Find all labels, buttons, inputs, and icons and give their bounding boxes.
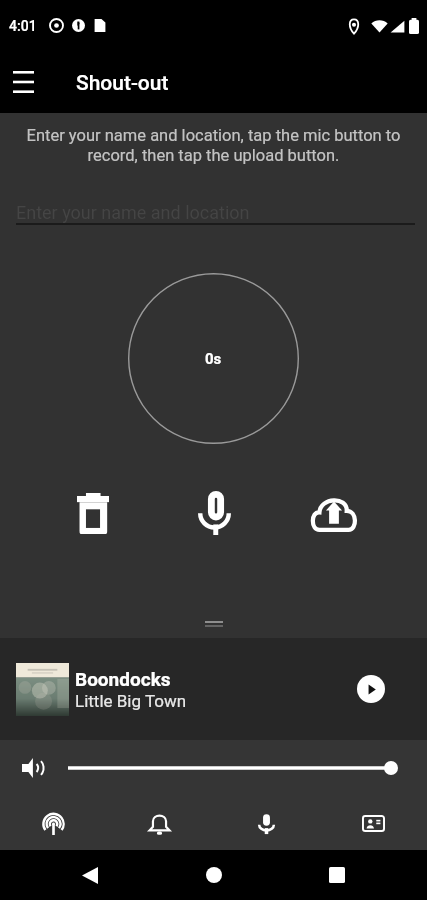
button[interactable]: Upload recording <box>306 485 362 541</box>
staticText: Enter your name and location <box>16 202 250 223</box>
staticText: 0s <box>205 350 222 368</box>
button[interactable]: Open navigation menu <box>0 59 46 105</box>
button[interactable]: Back <box>66 851 114 899</box>
button[interactable]: Notifications <box>106 805 213 841</box>
staticText: 4:01 <box>9 18 37 34</box>
button[interactable]: Play <box>349 667 393 711</box>
button[interactable]: Microphone <box>213 805 320 841</box>
staticText: Little Big Town <box>75 691 187 711</box>
button[interactable]: Recent apps <box>313 851 361 899</box>
staticText: Enter your name and location, tap the mi… <box>22 126 405 165</box>
button[interactable]: Home <box>190 851 238 899</box>
button[interactable]: Media output <box>320 805 427 841</box>
staticText: Shout-out <box>76 71 169 96</box>
button[interactable]: Cast <box>0 805 106 841</box>
button[interactable]: Record <box>186 485 242 541</box>
button[interactable]: Delete recording <box>65 485 121 541</box>
staticText: Boondocks <box>75 668 171 690</box>
